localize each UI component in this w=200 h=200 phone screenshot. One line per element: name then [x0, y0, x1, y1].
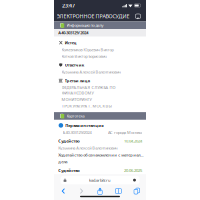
staticText: 10.04.2024: [124, 138, 142, 144]
button[interactable]: Поделиться: [91, 186, 109, 196]
staticText: Кожевников Юрьевич Виктор: [62, 47, 114, 52]
staticText: АС города Москвы: [108, 130, 142, 135]
button[interactable]: Сообщения: [134, 12, 142, 20]
button[interactable]: Судейство: [54, 135, 146, 164]
staticText: Ответчик: [65, 62, 84, 68]
button[interactable]: Вкладки: [128, 186, 146, 196]
staticText: МОНИТОРИНГУ: [62, 97, 92, 102]
staticText: Котков Виктор Борисович: [62, 54, 107, 59]
staticText: Судейство: [58, 168, 79, 173]
staticText: Кузьмина Алексей Валентинович: [58, 145, 117, 151]
staticText: А40-303129/2024: [58, 30, 88, 35]
staticText: Ходатайство об ознакомлении с материалам…: [58, 152, 144, 157]
staticText: Первая инстанция: [65, 123, 103, 128]
staticText: Судейство: [58, 138, 79, 144]
staticText: 23:47: [62, 2, 75, 9]
staticText: дела: [58, 159, 67, 164]
staticText: Третьи лица: [65, 78, 90, 83]
staticText: А40-303129/2024: [63, 130, 92, 135]
staticText: ЭЛЕКТРОННОЕ ПРАВОСУДИЕ: [56, 13, 129, 20]
staticText: ФЕДЕРАЛЬНАЯ СЛУЖБА ПО ФИНАНСОВОМУ: [62, 85, 116, 95]
button[interactable]: Судейство: [54, 164, 146, 173]
staticText: 20.06.2025: [124, 168, 142, 173]
staticText: Информация по делу: [67, 23, 104, 28]
staticText: Кузьмина Алексей Валентинович: [62, 69, 121, 74]
staticText: kad.arbitr.ru: [89, 177, 110, 183]
button[interactable]: Вперёд: [72, 186, 91, 196]
staticText: Истец: [65, 40, 77, 45]
staticText: Картотека: [67, 113, 85, 119]
button[interactable]: Закладки: [109, 186, 128, 196]
button[interactable]: Назад: [54, 186, 72, 196]
button[interactable]: Первая инстанция: [54, 120, 146, 135]
staticText: ПРОКУРАТУРА Г. МОСКВЫ: [62, 103, 112, 109]
